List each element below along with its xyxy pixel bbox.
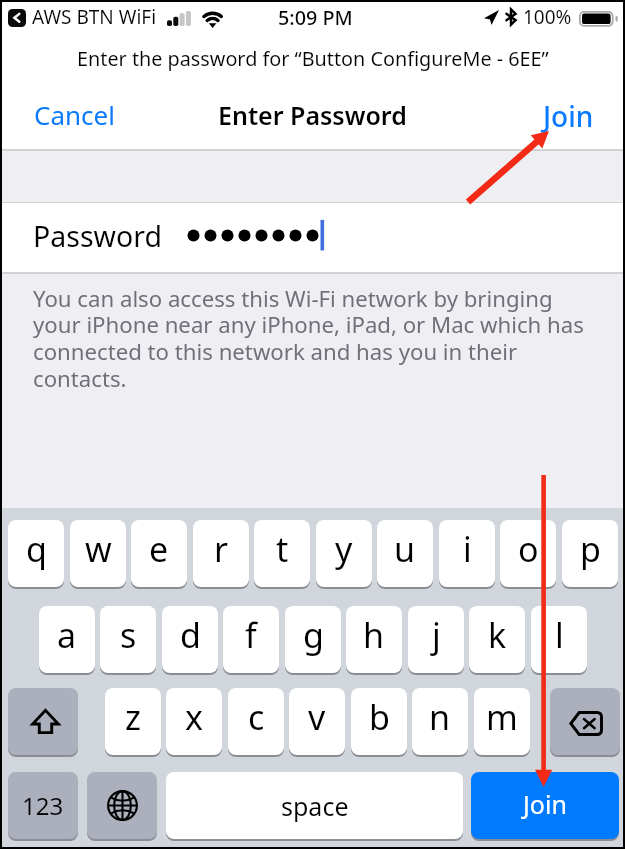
staticText: e: [149, 526, 169, 572]
button[interactable]: Password: [2, 203, 623, 272]
staticText: 5:09 PM: [278, 4, 353, 31]
button[interactable]: d: [162, 606, 218, 673]
button[interactable]: Join: [543, 97, 594, 135]
staticText: a: [57, 612, 77, 658]
staticText: l: [555, 612, 564, 658]
staticText: space: [281, 789, 349, 823]
staticText: g: [303, 612, 324, 658]
button[interactable]: x: [166, 688, 222, 755]
button[interactable]: m: [474, 688, 530, 755]
button[interactable]: p: [562, 520, 618, 587]
staticText: k: [488, 612, 507, 658]
staticText: h: [363, 612, 385, 658]
button[interactable]: o: [500, 520, 556, 587]
staticText: r: [214, 526, 229, 572]
button[interactable]: l: [531, 606, 587, 673]
button[interactable]: e: [131, 520, 187, 587]
button[interactable]: y: [316, 520, 372, 587]
button[interactable]: Shift: [8, 688, 78, 755]
staticText: f: [245, 612, 257, 658]
button[interactable]: i: [439, 520, 495, 587]
button[interactable]: s: [100, 606, 156, 673]
staticText: v: [308, 694, 326, 740]
button[interactable]: z: [105, 688, 161, 755]
button[interactable]: u: [377, 520, 433, 587]
staticText: AWS BTN WiFi: [32, 4, 157, 30]
button[interactable]: h: [346, 606, 402, 673]
button[interactable]: c: [228, 688, 284, 755]
staticText: Password: [33, 217, 162, 256]
staticText: You can also access this Wi-Fi network b…: [33, 283, 591, 393]
staticText: y: [335, 526, 353, 572]
staticText: d: [180, 612, 201, 658]
staticText: Join: [543, 97, 594, 135]
button[interactable]: g: [285, 606, 341, 673]
button[interactable]: k: [469, 606, 525, 673]
button[interactable]: j: [408, 606, 464, 673]
button[interactable]: Backspace: [550, 688, 620, 755]
staticText: m: [486, 694, 518, 740]
button[interactable]: q: [8, 520, 64, 587]
staticText: 123: [22, 789, 64, 822]
staticText: x: [185, 694, 203, 740]
staticText: b: [369, 694, 390, 740]
button[interactable]: n: [412, 688, 468, 755]
staticText: s: [120, 612, 137, 658]
button[interactable]: r: [193, 520, 249, 587]
staticText: t: [276, 526, 289, 572]
button[interactable]: b: [351, 688, 407, 755]
staticText: 100%: [523, 4, 572, 30]
staticText: o: [518, 526, 539, 572]
staticText: n: [429, 694, 451, 740]
staticText: Enter Password: [218, 98, 407, 132]
button[interactable]: t: [254, 520, 310, 587]
staticText: p: [580, 526, 601, 572]
staticText: Enter the password for “Button Configure…: [77, 45, 549, 72]
staticText: z: [125, 694, 141, 740]
staticText: q: [26, 526, 47, 572]
staticText: c: [248, 694, 265, 740]
button[interactable]: 123: [8, 772, 78, 839]
button[interactable]: Join: [471, 772, 619, 839]
staticText: Join: [523, 787, 567, 821]
button[interactable]: w: [70, 520, 126, 587]
staticText: u: [394, 526, 416, 572]
button[interactable]: f: [223, 606, 279, 673]
button[interactable]: Back: [8, 9, 26, 27]
staticText: w: [85, 526, 112, 572]
button[interactable]: v: [289, 688, 345, 755]
staticText: i: [463, 526, 472, 572]
button[interactable]: space: [166, 772, 463, 839]
staticText: j: [432, 612, 441, 658]
button[interactable]: a: [39, 606, 95, 673]
button[interactable]: Cancel: [34, 97, 115, 132]
button[interactable]: Change keyboard: [87, 772, 157, 839]
staticText: Cancel: [34, 97, 115, 132]
